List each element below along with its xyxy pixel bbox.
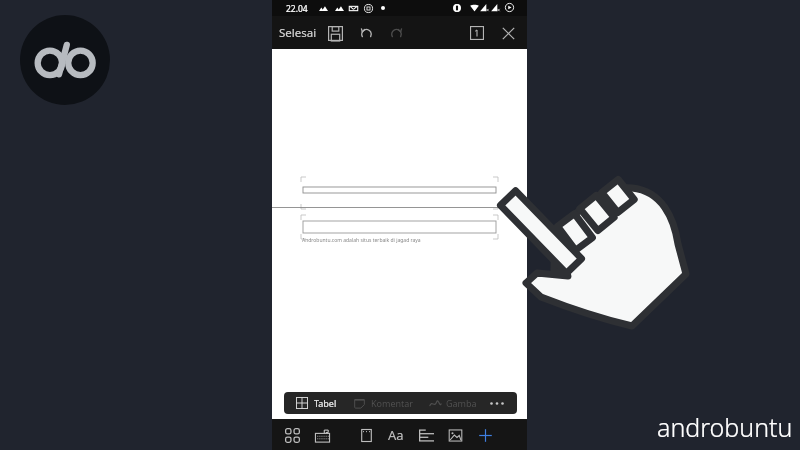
staticText: Gamba bbox=[446, 397, 477, 409]
button[interactable]: Redo bbox=[384, 21, 408, 45]
staticText: Androbuntu.com adalah situs terbaik di j… bbox=[302, 237, 421, 244]
staticText: Komentar bbox=[371, 397, 414, 409]
button[interactable]: Selesai bbox=[279, 16, 317, 49]
staticText: Selesai bbox=[279, 25, 317, 41]
staticText: 22.04 bbox=[286, 3, 308, 15]
button[interactable]: Tabel bbox=[296, 392, 337, 414]
button[interactable]: Apps bbox=[280, 423, 304, 447]
button[interactable]: Text format bbox=[384, 423, 408, 447]
button[interactable]: Komentar bbox=[354, 392, 414, 414]
staticText: Tabel bbox=[314, 397, 337, 409]
button[interactable]: Stamp bbox=[310, 423, 334, 447]
staticText: Aa bbox=[388, 426, 404, 444]
button[interactable]: Page count bbox=[465, 21, 489, 45]
button[interactable]: Save bbox=[323, 21, 347, 45]
button[interactable]: Gamba bbox=[429, 392, 477, 414]
button[interactable]: Close bbox=[496, 21, 520, 45]
button[interactable]: Page bbox=[354, 423, 378, 447]
button[interactable]: Image bbox=[443, 423, 467, 447]
button[interactable]: Undo bbox=[354, 21, 378, 45]
button[interactable]: More options bbox=[484, 392, 510, 414]
button[interactable]: Paragraph bbox=[414, 423, 438, 447]
button[interactable]: Add bbox=[473, 423, 497, 447]
staticText: androbuntu bbox=[657, 410, 793, 444]
